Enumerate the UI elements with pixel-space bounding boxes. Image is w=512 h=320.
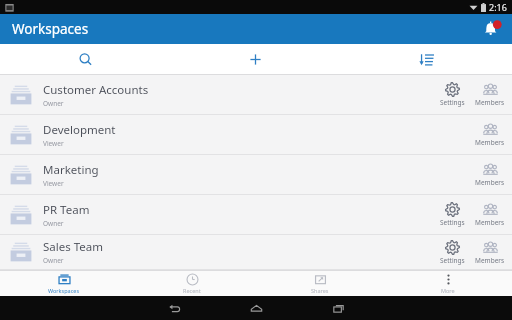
button[interactable]: Settings xyxy=(434,75,470,114)
staticText: Owner xyxy=(43,219,64,228)
button[interactable]: More xyxy=(384,271,512,296)
staticText: Members xyxy=(475,138,505,147)
button[interactable]: Members xyxy=(472,195,508,234)
staticText: Settings xyxy=(440,98,465,107)
button[interactable]: Settings xyxy=(434,195,470,234)
button[interactable]: Customer Accounts xyxy=(0,75,512,115)
staticText: Members xyxy=(475,178,505,187)
staticText: Members xyxy=(475,218,505,227)
staticText: More xyxy=(441,287,455,294)
button[interactable]: Development xyxy=(0,115,512,155)
staticText: 2:16 xyxy=(489,1,507,13)
button[interactable]: Marketing xyxy=(0,155,512,195)
staticText: Marketing xyxy=(43,162,99,178)
button[interactable]: Sort xyxy=(341,44,512,75)
staticText: Owner xyxy=(43,256,64,265)
staticText: Customer Accounts xyxy=(43,82,149,98)
staticText: Members xyxy=(475,98,505,107)
button[interactable]: Sales Team xyxy=(0,235,512,270)
staticText: Members xyxy=(475,256,505,265)
button[interactable]: Add workspace xyxy=(170,44,341,75)
staticText: Viewer xyxy=(43,139,64,148)
button[interactable]: Search xyxy=(0,44,170,75)
staticText: Owner xyxy=(43,99,64,108)
staticText: Workspaces xyxy=(12,20,89,38)
button[interactable]: Recent xyxy=(128,271,256,296)
staticText: Workspaces xyxy=(48,287,80,294)
button[interactable]: Home xyxy=(241,296,271,320)
staticText: Viewer xyxy=(43,179,64,188)
button[interactable]: Recents xyxy=(323,296,353,320)
button[interactable]: Back xyxy=(159,296,189,320)
button[interactable]: Workspaces xyxy=(0,271,128,296)
button[interactable]: Members xyxy=(472,155,508,194)
button[interactable]: Members xyxy=(472,75,508,114)
button[interactable]: PR Team xyxy=(0,195,512,235)
button[interactable]: Members xyxy=(472,235,508,269)
button[interactable]: Settings xyxy=(434,235,470,269)
staticText: Recent xyxy=(183,287,201,294)
button[interactable]: Shares xyxy=(256,271,384,296)
staticText: Development xyxy=(43,122,116,138)
button[interactable]: Members xyxy=(472,115,508,154)
staticText: PR Team xyxy=(43,202,90,218)
staticText: Settings xyxy=(440,256,465,265)
button[interactable]: Notifications xyxy=(478,15,506,43)
staticText: Settings xyxy=(440,218,465,227)
staticText: Shares xyxy=(311,287,329,294)
staticText: Sales Team xyxy=(43,239,103,255)
